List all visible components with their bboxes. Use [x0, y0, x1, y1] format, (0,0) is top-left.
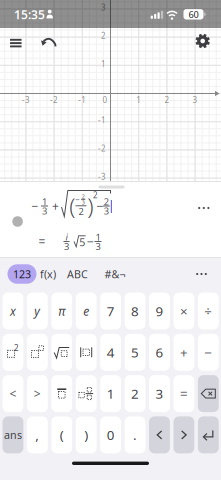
staticText: -3	[98, 171, 106, 182]
staticText: 1	[101, 58, 106, 69]
staticText: =	[180, 385, 188, 402]
button[interactable]: Power	[27, 334, 48, 371]
staticText: 3	[155, 385, 163, 402]
staticText: ×	[180, 302, 188, 320]
staticText: 1	[107, 385, 115, 402]
staticText: 9	[155, 302, 163, 320]
staticText: 3	[82, 199, 85, 206]
staticText: #&¬	[104, 267, 125, 281]
button[interactable]: Row options	[0, 0, 221, 480]
staticText: i	[65, 231, 67, 243]
staticText: (	[60, 426, 64, 444]
button[interactable]: π	[51, 292, 72, 329]
button[interactable]: =	[173, 375, 194, 412]
staticText: −	[87, 233, 94, 249]
staticText: 3	[95, 240, 100, 252]
staticText: 2	[14, 343, 19, 353]
button[interactable]: −	[198, 334, 219, 371]
staticText: 60	[188, 8, 198, 21]
staticText: 5	[131, 343, 139, 361]
staticText: 1	[42, 195, 47, 208]
staticText: (	[69, 191, 75, 221]
button[interactable]: 7	[100, 292, 121, 329]
staticText: 5	[79, 235, 85, 249]
button[interactable]: (	[51, 416, 72, 453]
staticText: −	[204, 343, 212, 361]
button[interactable]: ABC	[64, 264, 90, 283]
button[interactable]: Recurring decimal	[51, 375, 72, 412]
staticText: ,	[35, 426, 39, 444]
button[interactable]: 6	[149, 334, 170, 371]
button[interactable]: More	[192, 266, 210, 282]
button[interactable]: 1	[100, 375, 121, 412]
button[interactable]: ×	[173, 292, 194, 329]
button[interactable]: 8	[125, 292, 145, 329]
button[interactable]: ,	[27, 416, 48, 453]
staticText: >	[34, 386, 41, 401]
staticText: 123	[13, 267, 31, 281]
button[interactable]: Symbols	[102, 264, 128, 283]
button[interactable]: 123	[7, 264, 36, 284]
staticText: 3	[101, 2, 106, 13]
staticText: 3	[104, 205, 109, 217]
staticText: ABC	[67, 267, 88, 281]
staticText: -3	[22, 95, 30, 105]
staticText: −	[75, 194, 80, 205]
button[interactable]: +	[173, 334, 194, 371]
staticText: -1	[78, 95, 86, 105]
button[interactable]: 2	[125, 375, 145, 412]
staticText: )	[87, 191, 93, 221]
staticText: e	[83, 303, 89, 319]
staticText: 2	[93, 190, 98, 200]
staticText: 3	[42, 205, 47, 217]
button[interactable]: Settings	[191, 29, 215, 53]
button[interactable]: ans	[2, 416, 23, 453]
staticText: ans	[4, 428, 22, 442]
button[interactable]: Menu	[5, 32, 27, 54]
staticText: 15:35	[14, 6, 45, 22]
staticText: π	[58, 303, 65, 319]
staticText: +	[180, 343, 188, 361]
button[interactable]: Move cursor left	[149, 416, 170, 453]
button[interactable]: Square	[2, 334, 23, 371]
staticText: 1	[136, 95, 141, 105]
staticText: f(x)	[40, 267, 56, 281]
button[interactable]: e	[76, 292, 97, 329]
staticText: 8	[131, 302, 139, 320]
staticText: -2	[98, 143, 106, 154]
button[interactable]: Absolute value	[76, 334, 97, 371]
button[interactable]: Square root	[51, 334, 72, 371]
staticText: .	[133, 426, 137, 444]
button[interactable]: 5	[125, 334, 145, 371]
staticText: 3	[64, 240, 69, 253]
staticText: <	[9, 386, 16, 401]
staticText: 1	[95, 231, 100, 243]
staticText: 0	[107, 426, 115, 444]
staticText: 4	[107, 343, 115, 361]
button[interactable]: Mixed fraction	[76, 375, 97, 412]
staticText: 2	[131, 385, 139, 402]
staticText: −	[31, 198, 38, 214]
button[interactable]: 9	[149, 292, 170, 329]
button[interactable]: x	[2, 292, 23, 329]
staticText: 0	[102, 95, 107, 105]
button[interactable]: )	[76, 416, 97, 453]
button[interactable]: 4	[100, 334, 121, 371]
button[interactable]: 3	[149, 375, 170, 412]
button[interactable]: Expression -1/3 + sqrt(((-2/3)/2)^2 - 2/…	[0, 186, 221, 256]
button[interactable]: ÷	[198, 292, 219, 329]
button[interactable]: .	[125, 416, 145, 453]
staticText: 2	[104, 195, 109, 208]
button[interactable]: Enter	[198, 416, 219, 453]
button[interactable]: Delete	[198, 375, 219, 412]
staticText: -2	[50, 95, 58, 105]
button[interactable]: 0	[100, 416, 121, 453]
button[interactable]: f(x)	[35, 264, 61, 283]
staticText: 2	[78, 205, 83, 217]
button[interactable]: y	[27, 292, 48, 329]
button[interactable]: <	[2, 375, 23, 412]
staticText: 2	[101, 30, 106, 41]
button[interactable]: Undo	[37, 31, 59, 53]
button[interactable]: Move cursor right	[173, 416, 194, 453]
button[interactable]: >	[27, 375, 48, 412]
